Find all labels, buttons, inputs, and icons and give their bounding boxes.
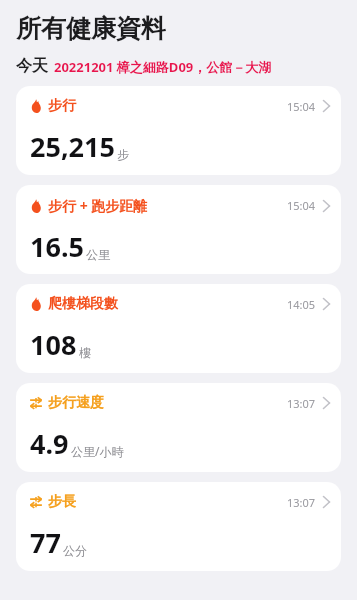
other: Open details	[323, 200, 330, 212]
staticText: 15:04	[287, 198, 316, 213]
staticText: 今天	[16, 56, 48, 76]
staticText: 25,215	[30, 128, 115, 165]
other: Open details	[323, 496, 330, 508]
staticText: 108	[30, 326, 77, 363]
staticText: 步長	[48, 493, 76, 511]
button[interactable]: 步長	[16, 482, 341, 571]
button[interactable]: 步行 + 跑步距離	[16, 185, 341, 274]
staticText: 15:04	[287, 99, 316, 114]
button[interactable]: 步行	[16, 86, 341, 175]
staticText: 公分	[63, 543, 87, 558]
staticText: 步行 + 跑步距離	[48, 196, 148, 215]
staticText: 步行	[48, 97, 76, 115]
staticText: 步行速度	[48, 394, 104, 412]
button[interactable]: 爬樓梯段數	[16, 284, 341, 373]
other: Open details	[323, 100, 330, 112]
staticText: 77	[30, 524, 61, 561]
staticText: 14:05	[287, 297, 316, 312]
staticText: 16.5	[30, 228, 84, 265]
other: Open details	[323, 298, 330, 310]
staticText: 13:07	[287, 495, 316, 510]
staticText: 公里/小時	[71, 443, 124, 459]
other: Open details	[323, 397, 330, 409]
staticText: 4.9	[30, 425, 69, 462]
staticText: 13:07	[287, 396, 316, 411]
staticText: 所有健康資料	[16, 13, 166, 44]
staticText: 步	[117, 147, 129, 162]
button[interactable]: 步行速度	[16, 383, 341, 472]
staticText: 樓	[79, 345, 91, 360]
staticText: 公里	[86, 247, 110, 262]
staticText: 爬樓梯段數	[48, 295, 118, 313]
staticText: 20221201 樟之細路D09，公館－大湖	[54, 58, 272, 76]
